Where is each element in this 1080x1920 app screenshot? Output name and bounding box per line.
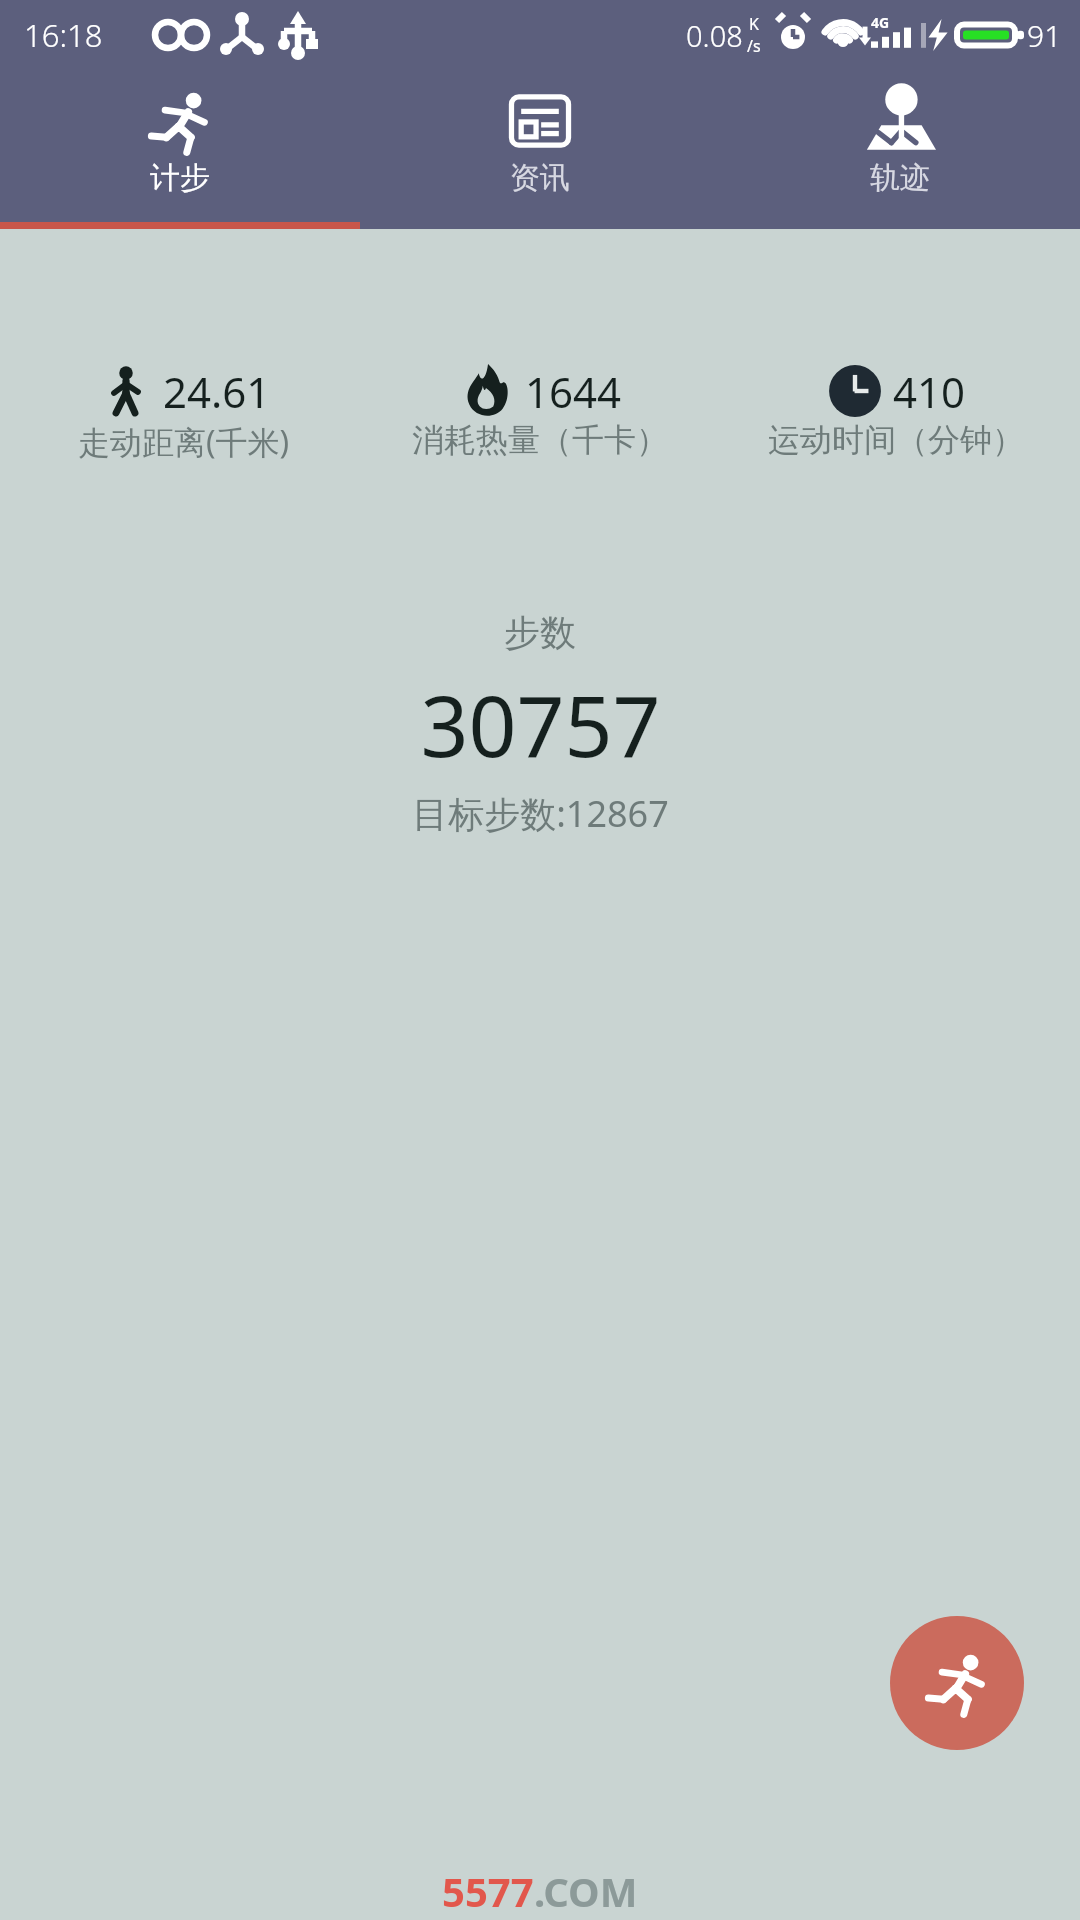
button[interactable]: 开始运动 [890, 1616, 1024, 1750]
button[interactable]: 资讯 [360, 69, 720, 229]
staticText: 16:18 [24, 14, 103, 56]
staticText: /s [747, 35, 761, 57]
staticText: 消耗热量（千卡） [412, 420, 668, 460]
staticText: 0.08 [686, 16, 743, 55]
staticText: 资讯 [510, 159, 570, 197]
button[interactable]: 410 [718, 362, 1074, 460]
staticText: 91 [1027, 15, 1062, 56]
staticText: 目标步数:12867 [412, 789, 669, 838]
staticText: 5577 [442, 1864, 534, 1918]
staticText: 24.61 [163, 363, 271, 420]
staticText: 30757 [420, 667, 661, 781]
staticText: 步数 [504, 610, 576, 655]
staticText: 计步 [150, 159, 210, 197]
staticText: 走动距离(千米) [78, 420, 290, 464]
button[interactable]: 1644 [362, 362, 718, 460]
staticText: 410 [893, 363, 966, 420]
staticText: 1644 [525, 363, 622, 420]
staticText: 运动时间（分钟） [768, 420, 1024, 460]
staticText: .COM [534, 1864, 638, 1918]
staticText: 4G [871, 13, 890, 32]
button[interactable]: 轨迹 [720, 69, 1080, 229]
staticText: 轨迹 [870, 159, 930, 197]
button[interactable]: 24.61 [6, 362, 362, 464]
button[interactable]: 计步 [0, 69, 360, 229]
staticText: K [749, 13, 759, 35]
